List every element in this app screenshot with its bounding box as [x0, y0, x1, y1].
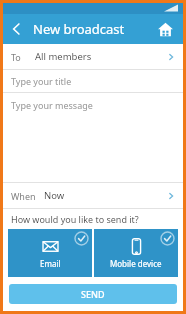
staticText: To [11, 51, 21, 63]
button[interactable]: Home [153, 17, 177, 41]
button[interactable]: To [3, 44, 183, 69]
staticText: Type your message [11, 99, 93, 111]
staticText: Email [40, 258, 61, 269]
staticText: When [11, 190, 36, 202]
staticText: Now [44, 189, 65, 202]
button[interactable]: When [3, 183, 183, 208]
staticText: All members [35, 50, 92, 63]
button[interactable]: Email [8, 229, 92, 277]
button[interactable]: SEND [9, 284, 177, 304]
button[interactable]: Type your message [3, 93, 183, 182]
staticText: Type your title [11, 75, 72, 87]
button[interactable]: Mobile device [94, 229, 178, 277]
staticText: New broadcast [33, 20, 125, 38]
button[interactable]: Type your title [3, 70, 183, 92]
staticText: How would you like to send it? [11, 213, 139, 225]
staticText: Mobile device [110, 258, 162, 269]
staticText: SEND [81, 288, 105, 300]
button[interactable]: Back [3, 15, 31, 43]
